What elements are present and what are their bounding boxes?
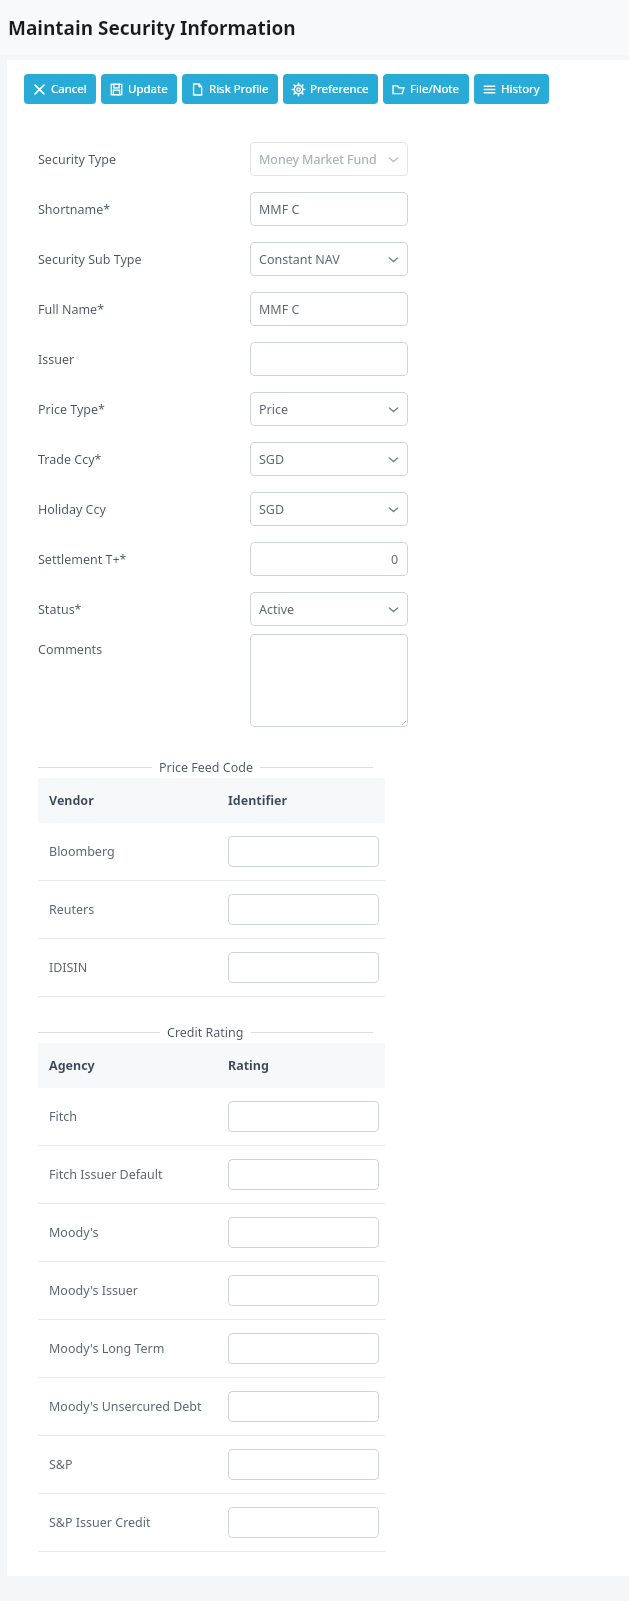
- staticText: Trade Ccy*: [38, 451, 102, 468]
- staticText: Price Feed Code: [159, 759, 253, 776]
- staticText: Agency: [49, 1057, 95, 1074]
- staticText: Identifier: [228, 792, 288, 809]
- staticText: Credit Rating: [167, 1024, 244, 1041]
- staticText: Security Type: [38, 151, 116, 168]
- staticText: 0: [391, 551, 399, 568]
- button[interactable]: Update: [101, 74, 177, 104]
- button[interactable]: [228, 1391, 379, 1422]
- staticText: MMF C: [259, 201, 300, 218]
- button[interactable]: [250, 634, 408, 727]
- button[interactable]: Price: [250, 392, 408, 426]
- button[interactable]: [228, 1217, 379, 1248]
- staticText: Full Name*: [38, 301, 105, 318]
- staticText: Price: [259, 401, 289, 418]
- staticText: Money Market Fund: [259, 151, 377, 168]
- staticText: S&P: [49, 1456, 73, 1473]
- button[interactable]: Risk Profile: [182, 74, 278, 104]
- staticText: Constant NAV: [259, 251, 340, 268]
- staticText: SGD: [259, 501, 285, 518]
- staticText: Shortname*: [38, 201, 111, 218]
- staticText: Fitch Issuer Default: [49, 1166, 163, 1183]
- staticText: Reuters: [49, 901, 95, 918]
- staticText: Holiday Ccy: [38, 501, 106, 518]
- staticText: Update: [128, 81, 168, 97]
- staticText: History: [501, 81, 540, 97]
- staticText: IDISIN: [49, 959, 88, 976]
- staticText: S&P Issuer Credit: [49, 1514, 151, 1531]
- button[interactable]: MMF C: [250, 292, 408, 326]
- button[interactable]: Active: [250, 592, 408, 626]
- button[interactable]: Constant NAV: [250, 242, 408, 276]
- button[interactable]: [228, 1333, 379, 1364]
- staticText: Issuer: [38, 351, 75, 368]
- button[interactable]: [228, 836, 379, 867]
- staticText: Security Sub Type: [38, 251, 142, 268]
- staticText: Active: [259, 601, 295, 618]
- button[interactable]: SGD: [250, 442, 408, 476]
- staticText: Moody's Long Term: [49, 1340, 165, 1357]
- staticText: Vendor: [49, 792, 94, 809]
- button[interactable]: [228, 952, 379, 983]
- button[interactable]: 0: [250, 542, 408, 576]
- staticText: Cancel: [51, 81, 87, 97]
- staticText: File/Note: [410, 81, 460, 97]
- staticText: MMF C: [259, 301, 300, 318]
- staticText: Moody's: [49, 1224, 99, 1241]
- staticText: Comments: [38, 641, 103, 658]
- button[interactable]: [228, 1449, 379, 1480]
- button[interactable]: [228, 1507, 379, 1538]
- button[interactable]: [228, 894, 379, 925]
- staticText: Moody's Unsercured Debt: [49, 1398, 202, 1415]
- staticText: Settlement T+*: [38, 551, 127, 568]
- button[interactable]: History: [474, 74, 549, 104]
- staticText: Bloomberg: [49, 843, 115, 860]
- staticText: Preference: [310, 81, 369, 97]
- staticText: Risk Profile: [209, 81, 269, 97]
- button[interactable]: Preference: [283, 74, 378, 104]
- button[interactable]: [250, 342, 408, 376]
- button[interactable]: Cancel: [24, 74, 96, 104]
- button[interactable]: [228, 1101, 379, 1132]
- button[interactable]: [228, 1275, 379, 1306]
- staticText: SGD: [259, 451, 285, 468]
- staticText: Price Type*: [38, 401, 105, 418]
- button[interactable]: Money Market Fund: [250, 142, 408, 176]
- staticText: Rating: [228, 1057, 269, 1074]
- staticText: Maintain Security Information: [8, 15, 296, 41]
- staticText: Status*: [38, 601, 82, 618]
- button[interactable]: File/Note: [383, 74, 469, 104]
- button[interactable]: MMF C: [250, 192, 408, 226]
- button[interactable]: SGD: [250, 492, 408, 526]
- staticText: Fitch: [49, 1108, 77, 1125]
- button[interactable]: [228, 1159, 379, 1190]
- staticText: Moody's Issuer: [49, 1282, 138, 1299]
